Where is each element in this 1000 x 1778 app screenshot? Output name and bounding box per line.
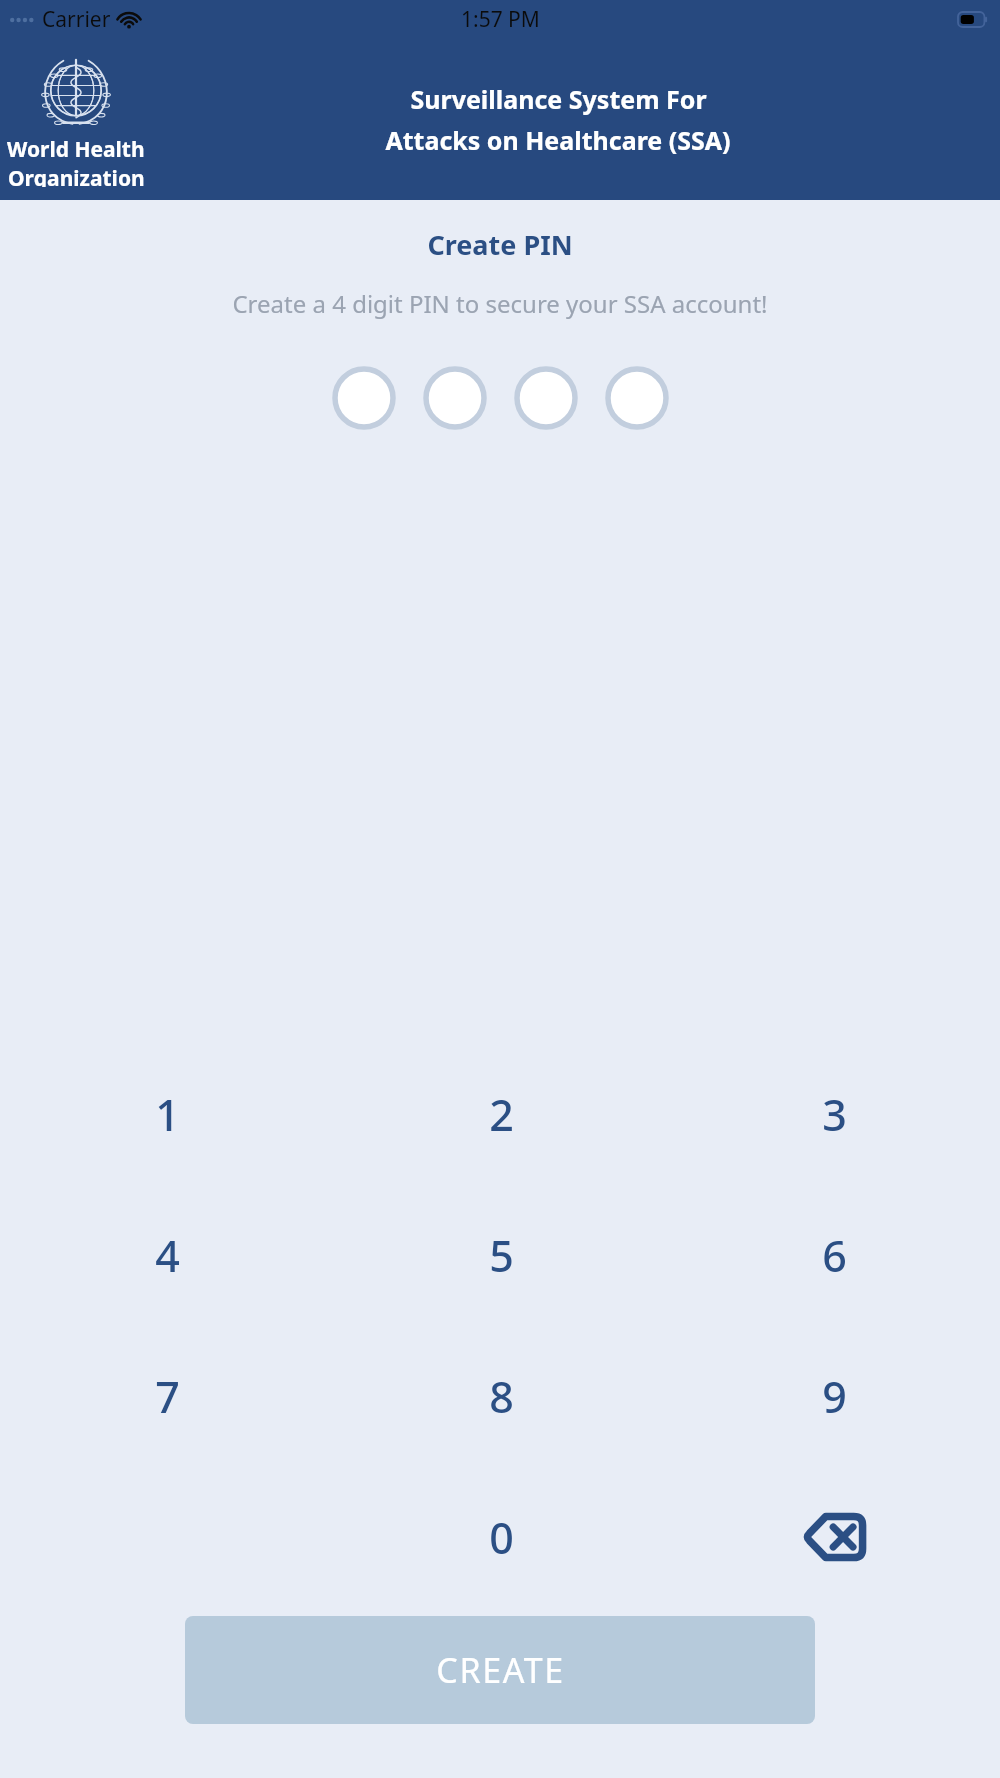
staticText: 2 [489, 1085, 514, 1144]
button[interactable]: 1 [117, 1075, 217, 1153]
staticText: 1:57 PM [461, 5, 540, 34]
button[interactable]: 6 [784, 1216, 884, 1294]
staticText: Create PIN [0, 226, 1000, 263]
button[interactable]: 3 [784, 1075, 884, 1153]
button[interactable]: CREATE [185, 1616, 815, 1724]
staticText: 7 [155, 1367, 180, 1426]
staticText: Surveillance System For [410, 82, 707, 116]
staticText: 0 [489, 1508, 514, 1567]
button[interactable]: 4 [117, 1216, 217, 1294]
button[interactable]: 0 [451, 1498, 551, 1576]
staticText: 6 [822, 1226, 847, 1285]
staticText: 9 [822, 1367, 847, 1426]
staticText: CREATE [436, 1647, 565, 1693]
staticText: Organization [8, 164, 145, 187]
staticText: 1 [155, 1085, 180, 1144]
button[interactable]: 8 [451, 1357, 551, 1435]
button[interactable]: 9 [784, 1357, 884, 1435]
staticText: 5 [489, 1226, 514, 1285]
button[interactable]: 5 [451, 1216, 551, 1294]
button[interactable]: 7 [117, 1357, 217, 1435]
staticText: 3 [822, 1085, 847, 1144]
staticText: Create a 4 digit PIN to secure your SSA … [0, 287, 1000, 320]
button[interactable]: 2 [451, 1075, 551, 1153]
staticText: 4 [155, 1226, 180, 1285]
staticText: World Health [7, 135, 145, 164]
staticText: Attacks on Healthcare (SSA) [385, 123, 731, 157]
staticText: 8 [489, 1367, 514, 1426]
staticText: Carrier [42, 5, 111, 34]
button[interactable]: Backspace [784, 1498, 884, 1576]
